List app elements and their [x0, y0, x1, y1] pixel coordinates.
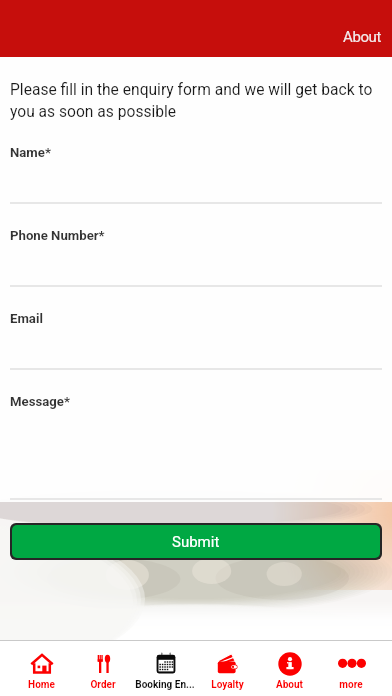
button[interactable]: More	[320, 641, 382, 696]
staticText: more	[339, 679, 363, 691]
button[interactable]: About	[258, 641, 320, 696]
button[interactable]: Booking Enquiry	[134, 641, 196, 696]
staticText: Booking En...	[135, 679, 195, 691]
other: More	[340, 652, 364, 676]
staticText: Submit	[172, 533, 220, 551]
staticText: Phone Number*	[10, 228, 105, 243]
staticText: Order	[90, 679, 116, 691]
staticText: About	[343, 28, 381, 46]
staticText: Name*	[10, 145, 51, 160]
other: About	[278, 652, 302, 676]
button[interactable]: Submit	[12, 525, 380, 558]
button[interactable]: Order	[72, 641, 134, 696]
other: Loyalty	[216, 652, 240, 676]
other: Order	[92, 652, 116, 676]
staticText: Email	[10, 311, 43, 326]
staticText: Message*	[10, 394, 70, 409]
staticText: Home	[28, 679, 55, 691]
other: Home	[30, 652, 54, 676]
staticText: Loyalty	[211, 679, 244, 691]
button[interactable]: Home	[10, 641, 72, 696]
other: Booking Enquiry	[154, 652, 178, 676]
staticText: About	[276, 679, 303, 691]
button[interactable]: Loyalty	[196, 641, 258, 696]
staticText: Please fill in the enquiry form and we w…	[10, 81, 382, 121]
